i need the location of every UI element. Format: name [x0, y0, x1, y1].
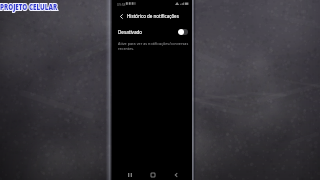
staticText: PROJETO CELULAR	[0, 1, 58, 13]
button[interactable]: Voltar	[170, 169, 182, 180]
staticText: Ative para ver as notificações/conversas…	[118, 41, 189, 51]
button[interactable]: Desativado	[118, 25, 188, 39]
staticText: Desativado	[118, 29, 143, 35]
button[interactable]: Voltar	[117, 12, 126, 21]
button[interactable]: Recentes	[124, 169, 136, 180]
staticText: 09:58	[117, 2, 126, 6]
button[interactable]: Início	[147, 169, 159, 180]
staticText: Histórico de notificações	[127, 13, 179, 19]
staticText: PROJETO CELULAR	[0, 1, 58, 13]
